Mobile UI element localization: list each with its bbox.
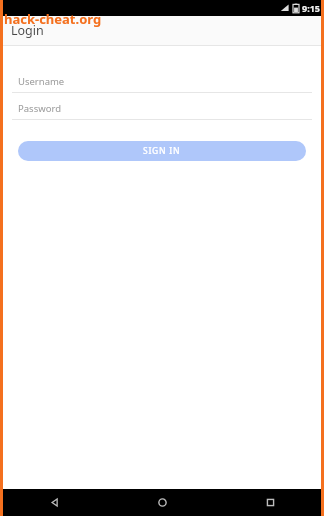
button[interactable]: Back <box>0 489 108 516</box>
staticText: hack-cheat.org <box>4 10 102 28</box>
button[interactable]: SIGN IN <box>18 141 306 161</box>
staticText: Username <box>18 75 65 88</box>
button[interactable]: Recent apps <box>216 489 324 516</box>
staticText: SIGN IN <box>143 145 181 157</box>
staticText: Password <box>18 102 61 115</box>
staticText: Login <box>11 22 44 39</box>
button[interactable]: Home <box>108 489 216 516</box>
button[interactable]: Password <box>12 100 312 120</box>
button[interactable]: Username <box>12 73 312 93</box>
staticText: 9:15 <box>302 2 320 14</box>
